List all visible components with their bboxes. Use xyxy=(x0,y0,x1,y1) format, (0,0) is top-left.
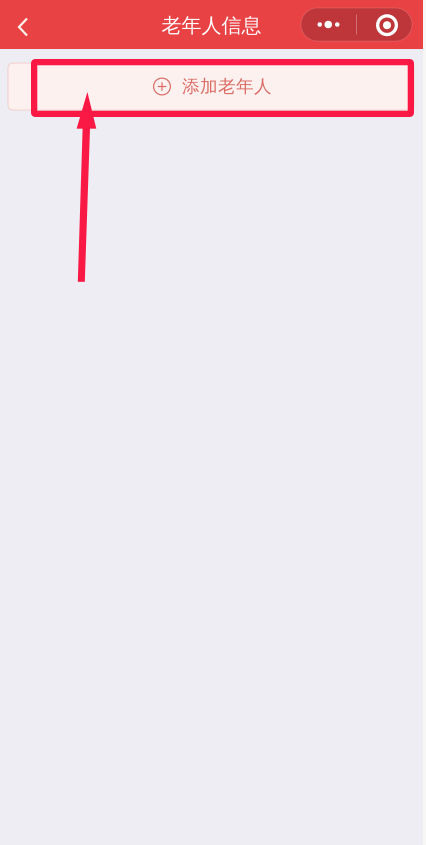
staticText: 老年人信息 xyxy=(161,13,261,38)
button[interactable]: 添加老年人 xyxy=(8,63,414,110)
staticText: 添加老年人 xyxy=(182,76,272,97)
button[interactable]: Back xyxy=(5,9,41,45)
button[interactable]: Mini program menu xyxy=(301,8,412,41)
